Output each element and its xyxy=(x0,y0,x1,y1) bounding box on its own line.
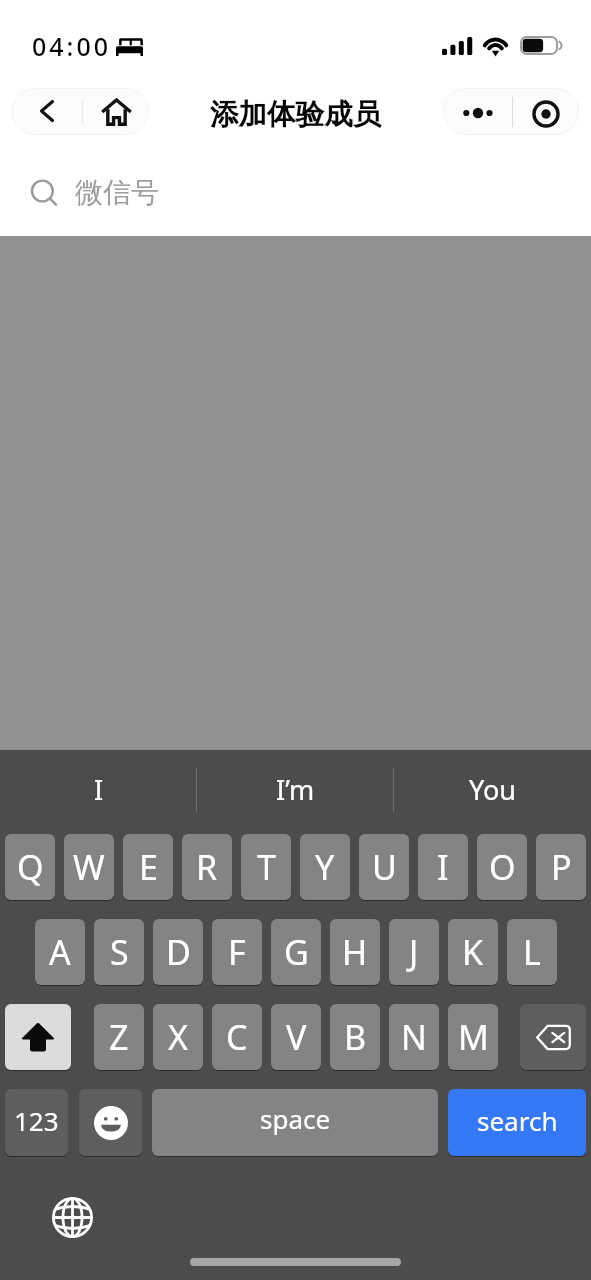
button[interactable]: O xyxy=(477,834,527,900)
staticText: space xyxy=(260,1101,331,1136)
button[interactable]: S xyxy=(94,919,144,985)
button[interactable]: P xyxy=(536,834,586,900)
staticText: I’m xyxy=(276,771,315,808)
button[interactable]: K xyxy=(448,919,498,985)
button[interactable]: B xyxy=(330,1004,380,1070)
staticText: Y xyxy=(315,844,335,890)
button[interactable]: D xyxy=(153,919,203,985)
other: Back xyxy=(40,100,54,122)
staticText: F xyxy=(228,929,246,975)
staticText: S xyxy=(110,929,129,975)
button[interactable]: M xyxy=(448,1004,498,1070)
button[interactable]: Backspace xyxy=(520,1004,586,1070)
staticText: 添加体验成员 xyxy=(210,97,381,133)
button[interactable]: You xyxy=(394,752,591,826)
staticText: U xyxy=(372,844,397,890)
staticText: You xyxy=(469,771,516,808)
staticText: N xyxy=(401,1014,427,1060)
button[interactable]: space xyxy=(152,1089,438,1156)
button[interactable]: Emoji xyxy=(79,1089,142,1156)
button[interactable]: Back xyxy=(12,88,149,135)
button[interactable]: H xyxy=(330,919,380,985)
staticText: J xyxy=(409,929,419,975)
button[interactable]: Z xyxy=(94,1004,144,1070)
button[interactable]: J xyxy=(389,919,439,985)
staticText: H xyxy=(342,929,368,975)
staticText: 04:00 xyxy=(32,29,112,63)
staticText: A xyxy=(49,929,71,975)
button[interactable]: I xyxy=(0,752,197,826)
button[interactable]: Q xyxy=(5,834,55,900)
staticText: I xyxy=(94,771,104,808)
staticText: P xyxy=(551,844,572,890)
button[interactable]: V xyxy=(271,1004,321,1070)
staticText: 123 xyxy=(14,1103,59,1138)
button[interactable]: E xyxy=(123,834,173,900)
button[interactable]: R xyxy=(182,834,232,900)
button[interactable]: 微信号 xyxy=(0,150,591,236)
staticText: D xyxy=(166,929,191,975)
button[interactable]: G xyxy=(271,919,321,985)
button[interactable]: U xyxy=(359,834,409,900)
other: More xyxy=(463,107,493,119)
button[interactable]: A xyxy=(35,919,85,985)
staticText: K xyxy=(462,929,484,975)
button[interactable]: X xyxy=(153,1004,203,1070)
button[interactable]: N xyxy=(389,1004,439,1070)
staticText: O xyxy=(489,844,516,890)
button[interactable]: Change keyboard xyxy=(46,1191,98,1243)
staticText: Z xyxy=(109,1014,129,1060)
button[interactable]: L xyxy=(507,919,557,985)
staticText: V xyxy=(286,1014,307,1060)
button[interactable]: search xyxy=(448,1089,586,1156)
staticText: E xyxy=(139,844,158,890)
staticText: G xyxy=(284,929,309,975)
button[interactable]: More xyxy=(443,88,579,135)
other: Close mini program xyxy=(532,100,560,128)
button[interactable]: Y xyxy=(300,834,350,900)
staticText: search xyxy=(477,1103,558,1138)
button[interactable]: I’m xyxy=(197,752,394,826)
staticText: I xyxy=(437,844,449,890)
button[interactable]: Shift xyxy=(5,1004,71,1070)
button[interactable]: W xyxy=(64,834,114,900)
staticText: C xyxy=(226,1014,248,1060)
staticText: Q xyxy=(17,844,44,890)
button[interactable]: T xyxy=(241,834,291,900)
other: Home xyxy=(101,98,132,126)
staticText: W xyxy=(73,844,105,890)
staticText: 微信号 xyxy=(75,175,159,210)
button[interactable]: F xyxy=(212,919,262,985)
button[interactable]: 123 xyxy=(5,1089,68,1156)
staticText: M xyxy=(458,1014,489,1060)
staticText: B xyxy=(344,1014,367,1060)
staticText: X xyxy=(168,1014,188,1060)
staticText: R xyxy=(196,844,218,890)
staticText: T xyxy=(257,844,276,890)
button[interactable]: I xyxy=(418,834,468,900)
staticText: L xyxy=(523,929,541,975)
button[interactable]: C xyxy=(212,1004,262,1070)
